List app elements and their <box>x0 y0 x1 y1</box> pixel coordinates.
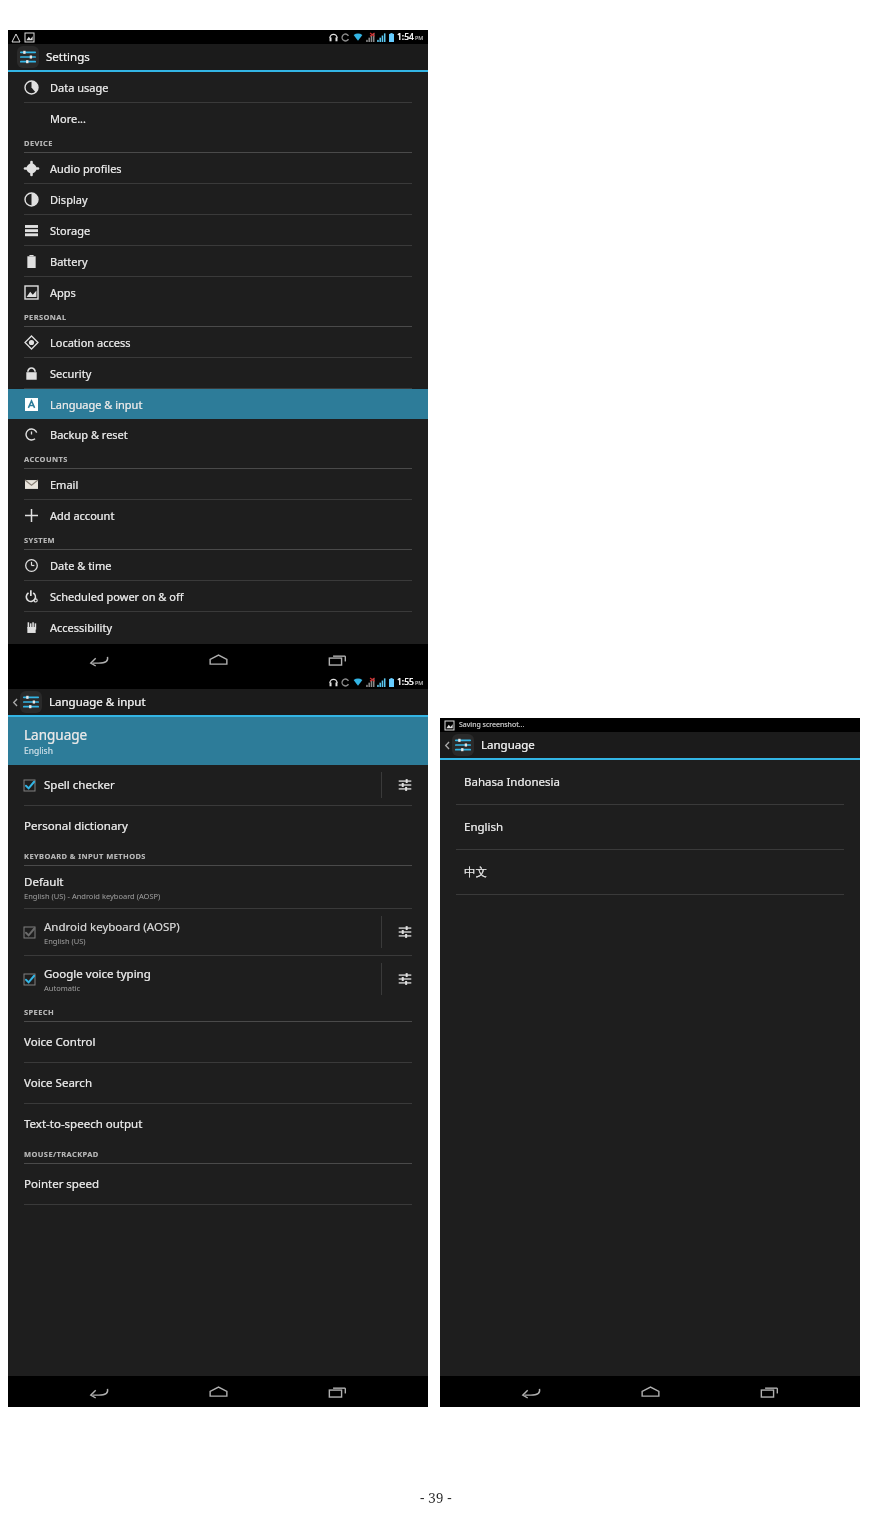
staticText: Bahasa Indonesia <box>464 774 560 790</box>
button[interactable]: Data usage <box>8 72 428 102</box>
button[interactable]: Personal dictionary <box>8 806 428 846</box>
staticText: 中文 <box>464 865 487 879</box>
staticText: KEYBOARD & INPUT METHODS <box>24 851 146 861</box>
staticText: 1:55 <box>397 676 414 688</box>
button[interactable]: Settings for Google voice typing <box>382 956 428 1002</box>
staticText: English <box>464 819 504 835</box>
button[interactable]: Home <box>622 1376 678 1407</box>
button[interactable]: Google voice typing <box>8 956 381 1002</box>
button[interactable]: Bahasa Indonesia <box>440 760 860 804</box>
button[interactable]: Email <box>8 469 428 499</box>
staticText: PM <box>415 34 424 41</box>
staticText: Backup & reset <box>50 427 128 442</box>
staticText: Email <box>50 477 79 492</box>
button[interactable]: Android keyboard (AOSP) <box>8 909 381 955</box>
staticText: Text-to-speech output <box>24 1116 143 1132</box>
staticText: Security <box>50 366 92 381</box>
staticText: Apps <box>50 285 76 300</box>
staticText: Language <box>481 737 535 753</box>
staticText: English (US) <box>44 936 86 946</box>
button[interactable]: Backup & reset <box>8 419 428 449</box>
staticText: Pointer speed <box>24 1176 99 1192</box>
button[interactable]: More... <box>8 103 428 133</box>
staticText: Default <box>24 874 64 890</box>
button[interactable]: Up <box>8 689 428 715</box>
staticText: ACCOUNTS <box>24 454 68 464</box>
staticText: Language & input <box>49 694 146 710</box>
staticText: DEVICE <box>24 138 53 148</box>
staticText: Saving screenshot... <box>459 720 525 730</box>
button[interactable]: Apps <box>8 277 428 307</box>
button[interactable]: App <box>8 44 428 70</box>
staticText: Language <box>24 726 88 744</box>
button[interactable]: 中文 <box>440 850 860 894</box>
button[interactable]: Location access <box>8 327 428 357</box>
button[interactable]: Language & input <box>8 389 428 419</box>
staticText: Android keyboard (AOSP) <box>44 919 180 935</box>
staticText: Date & time <box>50 558 112 573</box>
button[interactable]: Security <box>8 358 428 388</box>
button[interactable]: Battery <box>8 246 428 276</box>
button[interactable]: Settings for Android keyboard (AOSP) <box>382 909 428 955</box>
button[interactable]: Language <box>8 717 428 765</box>
button[interactable]: Recents <box>741 1376 797 1407</box>
button[interactable]: Add account <box>8 500 428 530</box>
button[interactable]: Settings for Spell checker <box>382 765 428 805</box>
staticText: English <box>24 745 53 757</box>
button[interactable]: Voice Search <box>8 1063 428 1103</box>
button[interactable]: Spell checker <box>8 765 381 805</box>
staticText: More... <box>50 111 87 126</box>
button[interactable]: Voice Control <box>8 1022 428 1062</box>
staticText: 1:54 <box>397 31 414 43</box>
button[interactable]: Back <box>71 1376 127 1407</box>
staticText: Spell checker <box>44 777 115 793</box>
staticText: Scheduled power on & off <box>50 589 184 604</box>
staticText: Location access <box>50 335 131 350</box>
button[interactable]: Accessibility <box>8 612 428 642</box>
staticText: Voice Search <box>24 1075 92 1091</box>
button[interactable]: Display <box>8 184 428 214</box>
staticText: Battery <box>50 254 88 269</box>
staticText: Data usage <box>50 80 109 95</box>
button[interactable]: Up <box>440 732 860 758</box>
staticText: - 39 - <box>420 1488 452 1507</box>
button[interactable]: Date & time <box>8 550 428 580</box>
staticText: PM <box>415 679 424 686</box>
staticText: SYSTEM <box>24 535 55 545</box>
button[interactable]: Pointer speed <box>8 1164 428 1204</box>
staticText: Display <box>50 192 88 207</box>
button[interactable]: Scheduled power on & off <box>8 581 428 611</box>
staticText: Language & input <box>50 397 143 412</box>
button[interactable]: Storage <box>8 215 428 245</box>
staticText: Voice Control <box>24 1034 96 1050</box>
button[interactable]: Back <box>503 1376 559 1407</box>
button[interactable]: Default <box>8 866 428 908</box>
button[interactable]: Text-to-speech output <box>8 1104 428 1144</box>
button[interactable]: Back <box>71 644 127 675</box>
staticText: Automatic <box>44 983 81 993</box>
staticText: English (US) - Android keyboard (AOSP) <box>24 891 161 901</box>
staticText: Storage <box>50 223 91 238</box>
staticText: Personal dictionary <box>24 818 128 834</box>
staticText: MOUSE/TRACKPAD <box>24 1149 99 1159</box>
button[interactable]: Recents <box>309 644 365 675</box>
staticText: Audio profiles <box>50 161 122 176</box>
button[interactable]: Home <box>190 1376 246 1407</box>
staticText: SPEECH <box>24 1007 55 1017</box>
button[interactable]: Recents <box>309 1376 365 1407</box>
staticText: Accessibility <box>50 620 113 635</box>
button[interactable]: Home <box>190 644 246 675</box>
button[interactable]: Audio profiles <box>8 153 428 183</box>
staticText: Add account <box>50 508 115 523</box>
staticText: PERSONAL <box>24 312 67 322</box>
staticText: Google voice typing <box>44 966 151 982</box>
staticText: Settings <box>46 49 90 65</box>
button[interactable]: English <box>440 805 860 849</box>
